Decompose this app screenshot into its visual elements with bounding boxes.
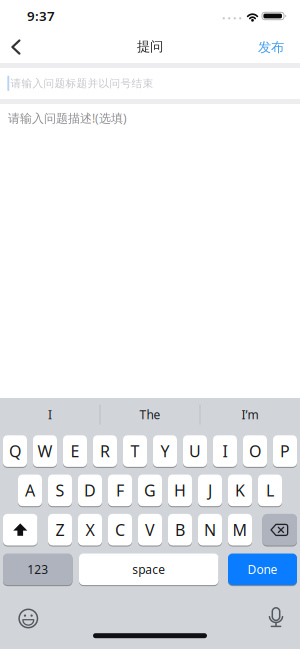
button[interactable]: Q bbox=[3, 434, 27, 468]
staticText: R bbox=[100, 440, 110, 462]
button[interactable]: J bbox=[198, 474, 222, 507]
staticText: M bbox=[232, 519, 247, 540]
staticText: N bbox=[204, 519, 216, 540]
staticText: Done bbox=[247, 561, 277, 577]
staticText: C bbox=[115, 519, 125, 540]
staticText: G bbox=[144, 480, 156, 501]
button[interactable]: Shift bbox=[3, 513, 37, 546]
button[interactable]: I bbox=[213, 434, 237, 468]
staticText: W bbox=[37, 440, 52, 462]
button[interactable]: V bbox=[138, 513, 162, 546]
staticText: space bbox=[132, 561, 165, 577]
button[interactable]: 发布 bbox=[249, 35, 293, 59]
button[interactable]: Delete bbox=[262, 513, 297, 546]
staticText: 提问 bbox=[137, 38, 163, 55]
staticText: Q bbox=[9, 440, 21, 462]
staticText: The bbox=[139, 406, 160, 422]
button[interactable]: P bbox=[273, 434, 297, 468]
button[interactable]: space bbox=[79, 552, 218, 586]
staticText: 9:37 bbox=[27, 7, 55, 25]
button[interactable]: O bbox=[243, 434, 267, 468]
button[interactable]: T bbox=[123, 434, 147, 468]
button[interactable]: Back bbox=[0, 37, 36, 57]
button[interactable]: I’m bbox=[202, 400, 298, 428]
staticText: Y bbox=[160, 440, 169, 462]
staticText: V bbox=[145, 519, 155, 540]
button[interactable]: The bbox=[102, 400, 198, 428]
staticText: 发布 bbox=[258, 39, 284, 55]
button[interactable]: L bbox=[258, 474, 282, 507]
button[interactable]: Done bbox=[228, 552, 297, 586]
button[interactable]: U bbox=[183, 434, 207, 468]
button[interactable]: R bbox=[93, 434, 117, 468]
staticText: B bbox=[175, 519, 185, 540]
button[interactable]: S bbox=[48, 474, 72, 507]
staticText: K bbox=[235, 480, 245, 501]
staticText: T bbox=[130, 440, 139, 462]
button[interactable]: I bbox=[2, 400, 98, 428]
staticText: F bbox=[116, 480, 124, 501]
button[interactable]: G bbox=[138, 474, 162, 507]
button[interactable]: H bbox=[168, 474, 192, 507]
staticText: O bbox=[249, 440, 261, 462]
staticText: E bbox=[70, 440, 79, 462]
staticText: A bbox=[25, 480, 35, 501]
button[interactable]: E bbox=[63, 434, 87, 468]
staticText: X bbox=[85, 519, 94, 540]
staticText: L bbox=[266, 480, 274, 501]
staticText: U bbox=[189, 440, 201, 462]
staticText: H bbox=[174, 480, 186, 501]
button[interactable]: C bbox=[108, 513, 132, 546]
button[interactable]: Z bbox=[48, 513, 72, 546]
button[interactable]: K bbox=[228, 474, 252, 507]
staticText: P bbox=[280, 440, 290, 462]
button[interactable]: D bbox=[78, 474, 102, 507]
button[interactable]: Emoji bbox=[15, 605, 41, 631]
button[interactable]: Dictate bbox=[266, 605, 286, 631]
button[interactable]: A bbox=[18, 474, 42, 507]
staticText: S bbox=[55, 480, 64, 501]
staticText: 123 bbox=[27, 561, 48, 577]
button[interactable]: Y bbox=[153, 434, 177, 468]
staticText: Z bbox=[55, 519, 64, 540]
button[interactable]: B bbox=[168, 513, 192, 546]
staticText: J bbox=[208, 480, 212, 501]
button[interactable]: N bbox=[198, 513, 222, 546]
staticText: I bbox=[222, 440, 227, 462]
button[interactable]: F bbox=[108, 474, 132, 507]
button[interactable]: X bbox=[78, 513, 102, 546]
staticText: D bbox=[84, 480, 96, 501]
staticText: I bbox=[48, 406, 52, 422]
button[interactable]: M bbox=[228, 513, 252, 546]
button[interactable]: 123 bbox=[3, 552, 72, 586]
staticText: 请输入问题描述!(选填) bbox=[8, 110, 127, 126]
staticText: I’m bbox=[241, 406, 258, 422]
staticText: 请输入问题标题并以问号结束 bbox=[10, 77, 153, 90]
button[interactable]: W bbox=[33, 434, 57, 468]
